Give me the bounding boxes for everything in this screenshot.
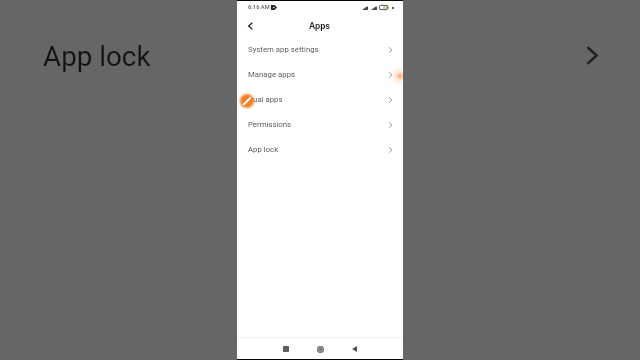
staticText: Manage apps [248,70,296,79]
button[interactable]: Permissions [237,112,403,137]
button[interactable]: App lock [237,137,403,162]
staticText: System app settings [248,45,319,54]
button[interactable]: Recents [276,339,296,359]
button[interactable]: Next [579,42,605,68]
staticText: Permissions [248,120,292,129]
button[interactable]: Manage apps [237,62,403,87]
staticText: App lock [248,145,279,154]
button[interactable]: Dual apps [237,87,403,112]
button[interactable]: Back [344,339,364,359]
button[interactable]: Back [242,18,258,34]
staticText: 6:16 AM [248,4,270,11]
button[interactable]: Home [310,339,330,359]
staticText: Dual apps [248,95,283,104]
staticText: Apps [309,20,331,31]
button[interactable]: System app settings [237,37,403,62]
staticText: App lock [43,40,151,73]
